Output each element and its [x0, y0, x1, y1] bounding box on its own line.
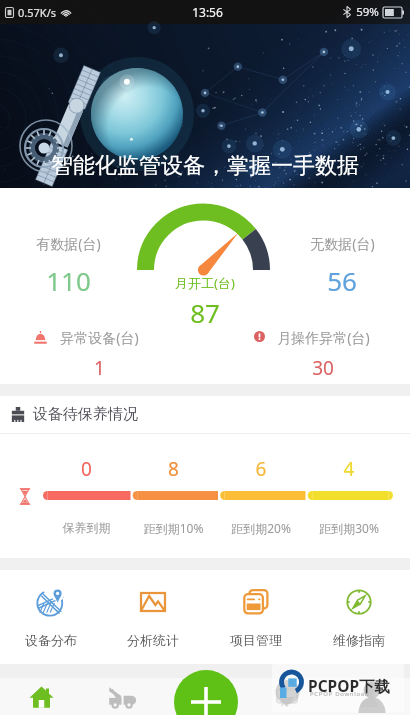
staticText: 异常设备(台) [60, 328, 139, 347]
staticText: 110 [46, 263, 91, 298]
staticText: 距到期10% [130, 520, 217, 536]
button[interactable]: Profile [328, 678, 410, 715]
staticText: 56 [327, 263, 357, 298]
staticText: 月开工(台) [175, 274, 235, 292]
staticText: 6 [217, 456, 305, 482]
staticText: 1 [94, 355, 105, 381]
button[interactable] [0, 328, 198, 384]
button[interactable]: 项目管理 [204, 570, 307, 664]
staticText: 0 [43, 456, 130, 482]
staticText: 月操作异常(台) [277, 328, 370, 347]
staticText: 30 [312, 355, 334, 381]
button[interactable]: Equipment [82, 678, 164, 715]
staticText: 距到期20% [217, 520, 305, 536]
staticText: 13:56 [192, 4, 223, 20]
staticText: PCPOP Download [310, 690, 370, 698]
button[interactable]: Messages [246, 678, 328, 715]
staticText: 智能化监管设备，掌握一手数据 [0, 152, 410, 180]
staticText: 0.57K/s [18, 5, 56, 20]
staticText: 项目管理 [230, 632, 282, 648]
staticText: 4 [305, 456, 393, 482]
button[interactable] [205, 328, 410, 384]
button[interactable]: 分析统计 [102, 570, 204, 664]
staticText: 无数据(台) [310, 234, 375, 253]
staticText: 设备待保养情况 [33, 405, 138, 424]
button[interactable]: 维修指南 [307, 570, 410, 664]
staticText: 设备分布 [25, 632, 77, 648]
staticText: 距到期30% [305, 520, 393, 536]
button[interactable]: Add [174, 670, 238, 715]
staticText: 8 [130, 456, 217, 482]
staticText: PCPOP下载 [308, 675, 391, 696]
staticText: 保养到期 [43, 520, 130, 535]
button[interactable]: 设备分布 [0, 570, 102, 664]
staticText: 87 [190, 295, 220, 330]
staticText: 有数据(台) [36, 234, 101, 253]
staticText: 维修指南 [333, 632, 385, 648]
button[interactable]: Home [0, 678, 82, 715]
staticText: 分析统计 [127, 632, 179, 648]
staticText: 59% [356, 4, 379, 20]
